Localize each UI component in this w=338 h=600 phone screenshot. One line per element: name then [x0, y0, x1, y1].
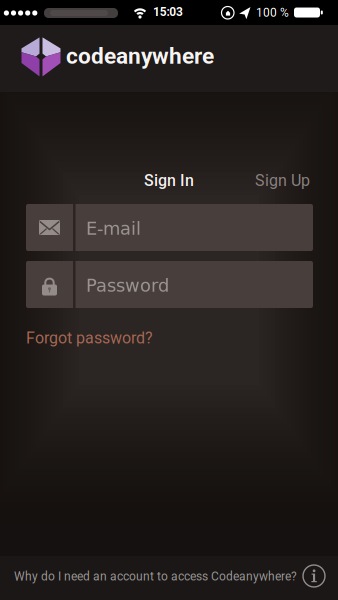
button[interactable]: E-mail — [26, 204, 313, 251]
staticText: Password — [86, 275, 169, 296]
staticText: 100 % — [256, 6, 289, 19]
button[interactable]: Sign In — [144, 171, 194, 190]
button[interactable]: Password — [26, 261, 313, 308]
staticText: Why do I need an account to access Codea… — [14, 569, 297, 583]
staticText: codeanywhere — [66, 43, 214, 69]
button[interactable]: Why do I need an account to access Codea… — [14, 569, 297, 583]
button[interactable] — [299, 561, 329, 591]
button[interactable]: Forgot password? — [26, 329, 153, 347]
staticText: Sign Up — [255, 171, 310, 190]
staticText: E-mail — [86, 218, 141, 239]
button[interactable]: Sign Up — [255, 171, 310, 190]
staticText: 15:03 — [153, 5, 183, 19]
staticText: Forgot password? — [26, 329, 153, 347]
staticText: Sign In — [144, 171, 194, 190]
